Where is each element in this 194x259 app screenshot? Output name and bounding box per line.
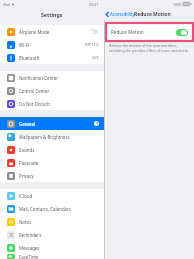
button[interactable]: Accessibility <box>106 11 135 17</box>
button[interactable]: iCloud <box>0 189 104 202</box>
button[interactable]: Wi-Fi <box>0 38 104 51</box>
staticText: Reduce Motion <box>134 11 171 18</box>
staticText: Mail, Contacts, Calendars <box>19 206 99 212</box>
staticText: Wi-Fi <box>19 42 85 48</box>
button[interactable]: Privacy <box>0 169 104 182</box>
staticText: Privacy <box>19 173 99 179</box>
button[interactable]: Wallpapers & Brightness <box>0 130 104 143</box>
staticText: Passcode <box>19 160 99 166</box>
staticText: Off <box>92 55 99 61</box>
staticText: iPad ⚑ <box>3 2 15 7</box>
button[interactable]: Passcode <box>0 156 104 169</box>
staticText: Do Not Disturb <box>19 101 99 107</box>
button[interactable]: General <box>0 117 104 130</box>
button[interactable]: Notes <box>0 215 104 228</box>
staticText: Wallpapers & Brightness <box>19 134 99 140</box>
staticText: Sounds <box>19 147 99 153</box>
staticText: Settings <box>41 11 63 18</box>
staticText: 09:41 <box>89 2 99 7</box>
button[interactable]: Do Not Disturb <box>0 97 104 110</box>
button[interactable]: Notification Center <box>0 71 104 84</box>
staticText: Reduce Motion <box>111 29 176 35</box>
staticText: Accessibility <box>110 11 135 17</box>
button[interactable]: Airplane Mode <box>0 25 104 38</box>
button[interactable]: Mail, Contacts, Calendars <box>0 202 104 215</box>
button[interactable]: Messages <box>0 241 104 254</box>
button[interactable]: Control Center <box>0 84 104 97</box>
staticText: Notification Center <box>19 75 99 81</box>
button[interactable]: Airplane Mode toggle <box>89 29 98 34</box>
button[interactable]: Reduce Motion <box>107 24 192 40</box>
button[interactable]: Reduce Motion toggle, on <box>176 29 188 36</box>
staticText: Messages <box>19 245 99 251</box>
staticText: General <box>19 121 94 127</box>
staticText: Reminders <box>19 232 99 238</box>
staticText: MY113 <box>85 42 99 48</box>
staticText: Reduce the motion of the user interface,… <box>109 43 190 53</box>
button[interactable]: Bluetooth <box>0 51 104 64</box>
staticText: Airplane Mode <box>19 29 89 35</box>
staticText: FaceTime <box>19 254 99 259</box>
button[interactable]: Sounds <box>0 143 104 156</box>
staticText: Bluetooth <box>19 55 92 61</box>
staticText: Notes <box>19 219 99 225</box>
staticText: 1 <box>96 121 98 126</box>
staticText: 100% <box>173 2 182 7</box>
button[interactable]: Reminders <box>0 228 104 241</box>
button[interactable]: FaceTime <box>0 254 104 259</box>
staticText: iCloud <box>19 193 99 199</box>
staticText: Control Center <box>19 88 99 94</box>
